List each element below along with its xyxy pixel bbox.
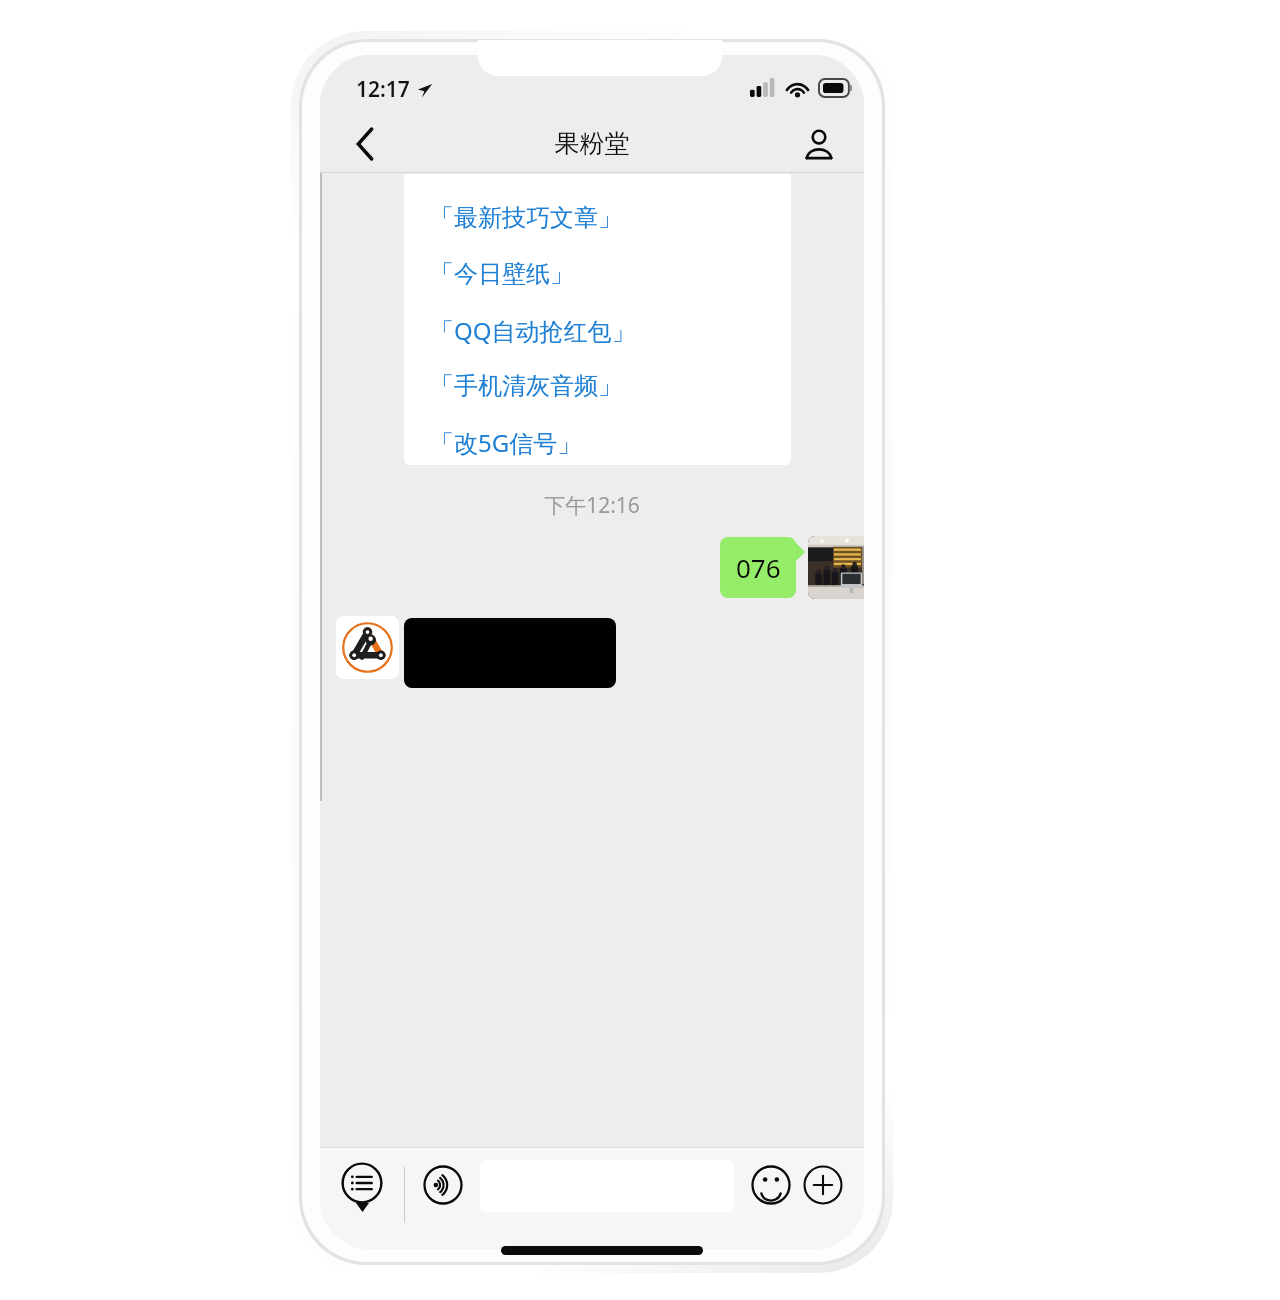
button[interactable]: 「改5G信号」 <box>430 426 582 459</box>
button[interactable]: 076 <box>720 537 796 598</box>
button[interactable]: Image message <box>404 618 616 688</box>
button[interactable]: Back <box>336 115 394 173</box>
button[interactable]: 「今日壁纸」 <box>430 259 574 289</box>
staticText: 果粉堂 <box>320 128 864 159</box>
button[interactable]: Menu <box>334 1155 390 1211</box>
button[interactable]: 「最新技巧文章」 <box>430 203 622 233</box>
button[interactable]: Emoji <box>744 1158 798 1212</box>
button[interactable]: Voice message <box>416 1158 470 1212</box>
button[interactable]: 「QQ自动抢红包」 <box>430 314 636 347</box>
button[interactable]: Contact info <box>790 115 848 173</box>
button[interactable]: More <box>796 1158 850 1212</box>
button[interactable]: My avatar <box>808 536 864 599</box>
button[interactable]: 「手机清灰音频」 <box>430 371 622 401</box>
button[interactable]: Sender avatar <box>336 616 399 679</box>
button[interactable]: 「最新技巧文章」 <box>404 174 791 465</box>
staticText: 下午12:16 <box>320 491 864 520</box>
staticText: 076 <box>736 550 781 585</box>
staticText: 12:17 <box>356 75 410 104</box>
